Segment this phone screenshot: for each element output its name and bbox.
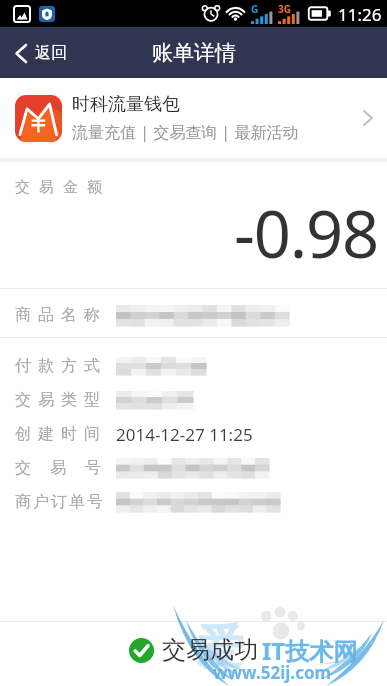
other: More [363, 110, 373, 126]
staticText: 商 [15, 492, 31, 512]
staticText: 交易成功 [162, 635, 258, 665]
staticText: 商 [15, 305, 31, 325]
staticText: 3G [278, 2, 291, 16]
staticText: 易 [39, 178, 54, 197]
staticText: 付 [15, 356, 31, 376]
button[interactable]: 时科流量钱包 [0, 78, 387, 158]
staticText: 间 [84, 424, 100, 444]
staticText: 品 [38, 305, 54, 325]
staticText: 2014-12-27 11:25 [116, 423, 253, 446]
staticText: 方 [61, 356, 77, 376]
staticText: 建 [38, 424, 54, 444]
staticText: G [251, 2, 259, 16]
staticText: 金 [63, 178, 78, 197]
staticText: 流量充值 | 交易查询 | 最新活动 [72, 121, 299, 143]
staticText: 易 [50, 458, 66, 478]
staticText: 交 [15, 458, 31, 478]
staticText: 款 [38, 356, 54, 376]
staticText: 号 [87, 492, 101, 512]
staticText: 订 [51, 492, 67, 512]
staticText: 返回 [35, 43, 67, 63]
button[interactable]: 返回 [0, 35, 81, 71]
staticText: www.52ij.com [213, 661, 332, 684]
staticText: 单 [69, 492, 85, 512]
staticText: 时 [61, 424, 77, 444]
staticText: 时科流量钱包 [72, 93, 180, 116]
staticText: 户 [33, 492, 49, 512]
staticText: 型 [84, 390, 100, 410]
staticText: 号 [85, 458, 101, 478]
staticText: IT技术网 [262, 634, 358, 667]
staticText: 名 [61, 305, 77, 325]
staticText: 称 [84, 305, 100, 325]
staticText: 交 [15, 178, 30, 197]
staticText: 交 [15, 390, 31, 410]
staticText: 易 [38, 390, 54, 410]
staticText: 额 [87, 178, 101, 197]
staticText: -0.98 [234, 189, 378, 278]
staticText: 11:26 [338, 3, 382, 26]
staticText: 类 [61, 390, 77, 410]
staticText: 式 [84, 356, 100, 376]
staticText: 账单详情 [152, 40, 236, 66]
staticText: 爱 [196, 618, 244, 678]
staticText: 创 [15, 424, 31, 444]
